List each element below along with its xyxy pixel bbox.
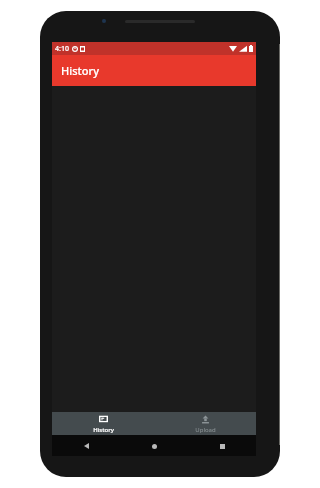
staticText: 4:10 [55, 44, 69, 54]
button[interactable]: Recent apps [214, 438, 230, 454]
staticText: Upload [195, 426, 216, 434]
button[interactable]: History [52, 412, 154, 435]
button[interactable]: Back [78, 438, 94, 454]
button[interactable]: Home [146, 438, 162, 454]
button[interactable]: Upload [154, 412, 256, 435]
staticText: History [61, 63, 99, 78]
staticText: History [93, 426, 114, 434]
